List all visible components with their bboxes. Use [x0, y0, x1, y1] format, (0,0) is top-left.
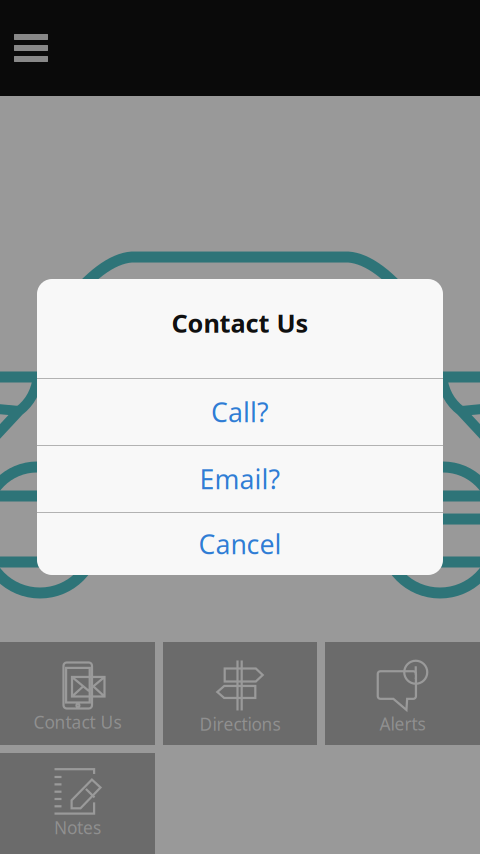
button[interactable]: Menu [0, 0, 62, 96]
staticText: Contact Us [171, 306, 308, 340]
button[interactable]: Cancel [37, 513, 443, 575]
staticText: Directions [199, 712, 280, 735]
staticText: Call? [211, 394, 269, 430]
staticText: Email? [199, 461, 280, 497]
button[interactable]: Contact Us [0, 642, 155, 745]
button[interactable]: Call? [37, 379, 443, 445]
button[interactable]: Email? [37, 446, 443, 512]
staticText: Cancel [198, 526, 281, 562]
staticText: Notes [54, 816, 101, 839]
button[interactable]: Notes [0, 753, 155, 854]
button[interactable]: Directions [163, 642, 317, 745]
staticText: Alerts [379, 712, 425, 735]
button[interactable]: Alerts [325, 642, 480, 745]
staticText: Contact Us [33, 710, 121, 733]
